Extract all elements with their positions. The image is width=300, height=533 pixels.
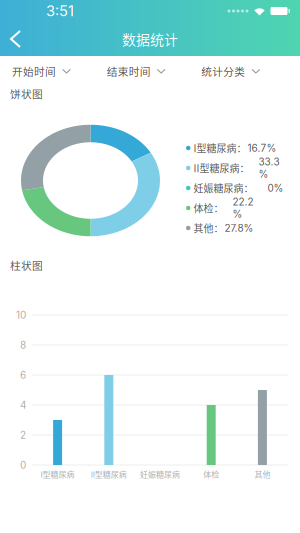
staticText: 体检 [203, 468, 219, 480]
staticText: 4 [20, 399, 26, 411]
staticText: 22.2% [232, 196, 253, 220]
staticText: 3:51 [46, 2, 74, 20]
staticText: I型糖尿病 [41, 468, 75, 480]
staticText: 妊娠糖尿病 [140, 468, 180, 480]
staticText: 0% [267, 182, 283, 194]
staticText: 饼状图 [10, 86, 43, 101]
staticText: 33.3% [258, 156, 279, 180]
staticText: I型糖尿病： [193, 141, 246, 155]
staticText: 2 [20, 429, 26, 441]
staticText: 柱状图 [10, 257, 43, 273]
staticText: 统计分类 [201, 63, 245, 79]
staticText: 16.7% [247, 142, 276, 154]
staticText: 结束时间 [107, 63, 151, 79]
button[interactable]: 统计分类 [197, 56, 264, 86]
button[interactable]: 开始时间 [8, 56, 75, 86]
staticText: II型糖尿病 [91, 468, 127, 480]
button[interactable]: 结束时间 [103, 56, 170, 86]
staticText: 妊娠糖尿病： [193, 181, 253, 195]
staticText: 6 [20, 369, 26, 381]
staticText: 数据统计 [122, 29, 178, 49]
staticText: 0 [20, 459, 26, 471]
staticText: 体检： [193, 201, 223, 215]
staticText: 10 [16, 309, 26, 321]
staticText: 8 [20, 339, 26, 351]
staticText: 27.8% [224, 222, 253, 234]
staticText: II型糖尿病： [193, 161, 249, 175]
staticText: 其他 [254, 468, 270, 480]
button[interactable]: Back [0, 22, 34, 56]
staticText: 开始时间 [12, 63, 56, 79]
staticText: 其他： [193, 221, 223, 235]
